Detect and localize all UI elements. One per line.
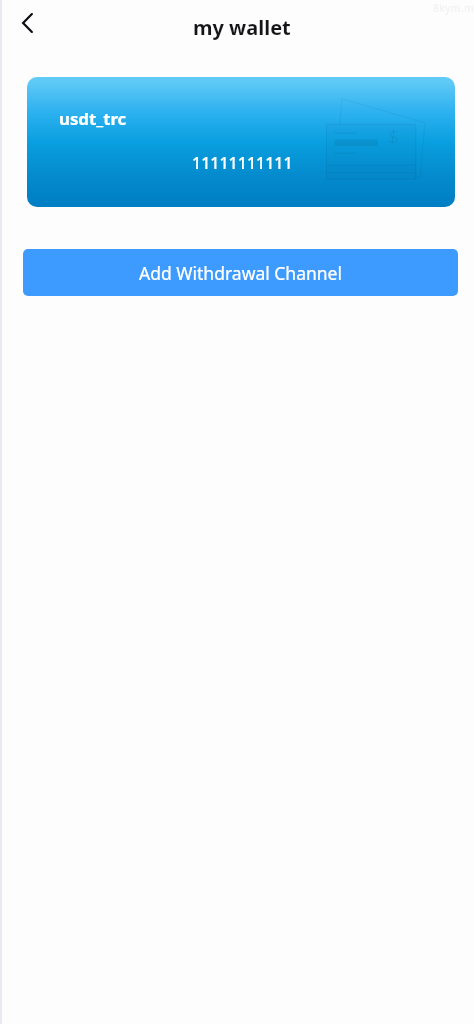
button[interactable]: Add Withdrawal Channel: [23, 249, 458, 296]
staticText: 11111111111: [192, 152, 293, 174]
button[interactable]: usdt_trc: [27, 77, 455, 207]
staticText: usdt_trc: [59, 107, 127, 130]
staticText: Add Withdrawal Channel: [139, 261, 342, 285]
staticText: 8kym.me: [433, 1, 474, 15]
button[interactable]: Back: [5, 1, 49, 45]
staticText: my wallet: [193, 14, 291, 41]
